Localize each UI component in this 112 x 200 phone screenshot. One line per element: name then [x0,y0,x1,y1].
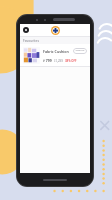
staticText: ₹1,299 [54,59,63,63]
staticText: 38% OFF [65,59,77,63]
staticText: Favourites [23,39,39,43]
button[interactable]: Fabric Cushion [20,44,90,66]
button[interactable]: Profile [23,27,29,33]
staticText: Fabric Cushion [43,49,71,54]
button[interactable]: ADD TO CART [73,48,87,54]
staticText: ₹ 799 [43,58,52,63]
button[interactable]: Home [51,26,60,35]
staticText: ADD TO CART [73,48,87,54]
